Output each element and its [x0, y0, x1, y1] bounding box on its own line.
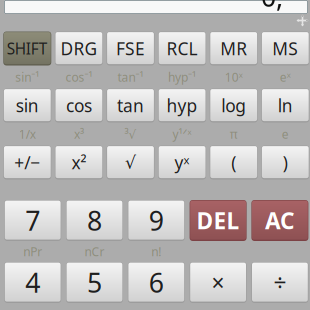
button[interactable]: cos	[55, 88, 103, 122]
button[interactable]: 9	[128, 200, 185, 241]
staticText: +/−	[14, 151, 40, 174]
staticText: AC	[265, 205, 295, 236]
staticText: x²	[71, 151, 86, 174]
staticText: cos	[66, 94, 92, 117]
staticText: x³	[74, 126, 84, 142]
button[interactable]: 6	[128, 262, 185, 303]
staticText: 1/x	[19, 126, 36, 142]
staticText: 4	[25, 264, 40, 301]
staticText: nPr	[23, 243, 42, 259]
staticText: 9	[149, 202, 164, 239]
staticText: 8	[87, 202, 102, 239]
button[interactable]: FSE	[106, 31, 154, 65]
staticText: RCL	[167, 37, 198, 60]
button[interactable]: DRG	[55, 31, 103, 65]
button[interactable]: 7	[4, 200, 61, 241]
staticText: log	[221, 94, 246, 117]
staticText: (	[231, 151, 236, 174]
button[interactable]: tan	[106, 88, 154, 122]
staticText: ln	[278, 94, 293, 117]
button[interactable]: SHIFT	[3, 31, 51, 65]
staticText: 0,	[261, 0, 283, 14]
button[interactable]: RCL	[158, 31, 206, 65]
button[interactable]: MS	[261, 31, 309, 65]
button[interactable]: 8	[66, 200, 123, 241]
button[interactable]: ln	[261, 88, 309, 122]
staticText: MS	[272, 37, 298, 60]
staticText: ×	[212, 267, 225, 298]
button[interactable]: ×	[190, 262, 247, 303]
button[interactable]: 4	[4, 262, 61, 303]
staticText: 7	[25, 202, 40, 239]
staticText: 10ˣ	[225, 69, 243, 85]
button[interactable]: (	[210, 145, 258, 179]
button[interactable]: yˣ	[158, 145, 206, 179]
staticText: DRG	[60, 37, 97, 60]
staticText: tan⁻¹	[117, 69, 143, 85]
staticText: √	[125, 152, 136, 173]
staticText: FSE	[116, 37, 145, 60]
staticText: ÷	[273, 267, 286, 298]
staticText: π	[230, 126, 238, 142]
button[interactable]: log	[210, 88, 258, 122]
button[interactable]: DEL	[190, 200, 247, 241]
staticText: n!	[151, 243, 161, 259]
button[interactable]: 5	[66, 262, 123, 303]
staticText: cos⁻¹	[65, 69, 92, 85]
staticText: hyp⁻¹	[168, 69, 196, 85]
button[interactable]: x²	[55, 145, 103, 179]
button[interactable]: +/−	[3, 145, 51, 179]
staticText: ³√	[124, 126, 136, 142]
staticText: yˣ	[175, 151, 190, 174]
staticText: MR	[220, 37, 247, 60]
staticText: e	[282, 126, 289, 142]
staticText: y¹ᐟˣ	[173, 126, 192, 142]
button[interactable]: hyp	[158, 88, 206, 122]
button[interactable]: MR	[210, 31, 258, 65]
button[interactable]: AC	[251, 200, 308, 241]
staticText: 5	[87, 264, 102, 301]
staticText: SHIFT	[7, 38, 48, 59]
staticText: DEL	[197, 205, 240, 236]
button[interactable]: ÷	[251, 262, 308, 303]
staticText: )	[283, 151, 288, 174]
staticText: hyp	[167, 94, 198, 117]
button[interactable]: )	[261, 145, 309, 179]
button[interactable]: √	[106, 145, 154, 179]
staticText: 6	[149, 264, 164, 301]
staticText: eˣ	[280, 69, 291, 85]
button[interactable]: sin	[3, 88, 51, 122]
staticText: tan	[117, 94, 144, 117]
staticText: sin	[16, 94, 39, 117]
staticText: nCr	[84, 243, 104, 259]
staticText: sin⁻¹	[15, 69, 39, 85]
